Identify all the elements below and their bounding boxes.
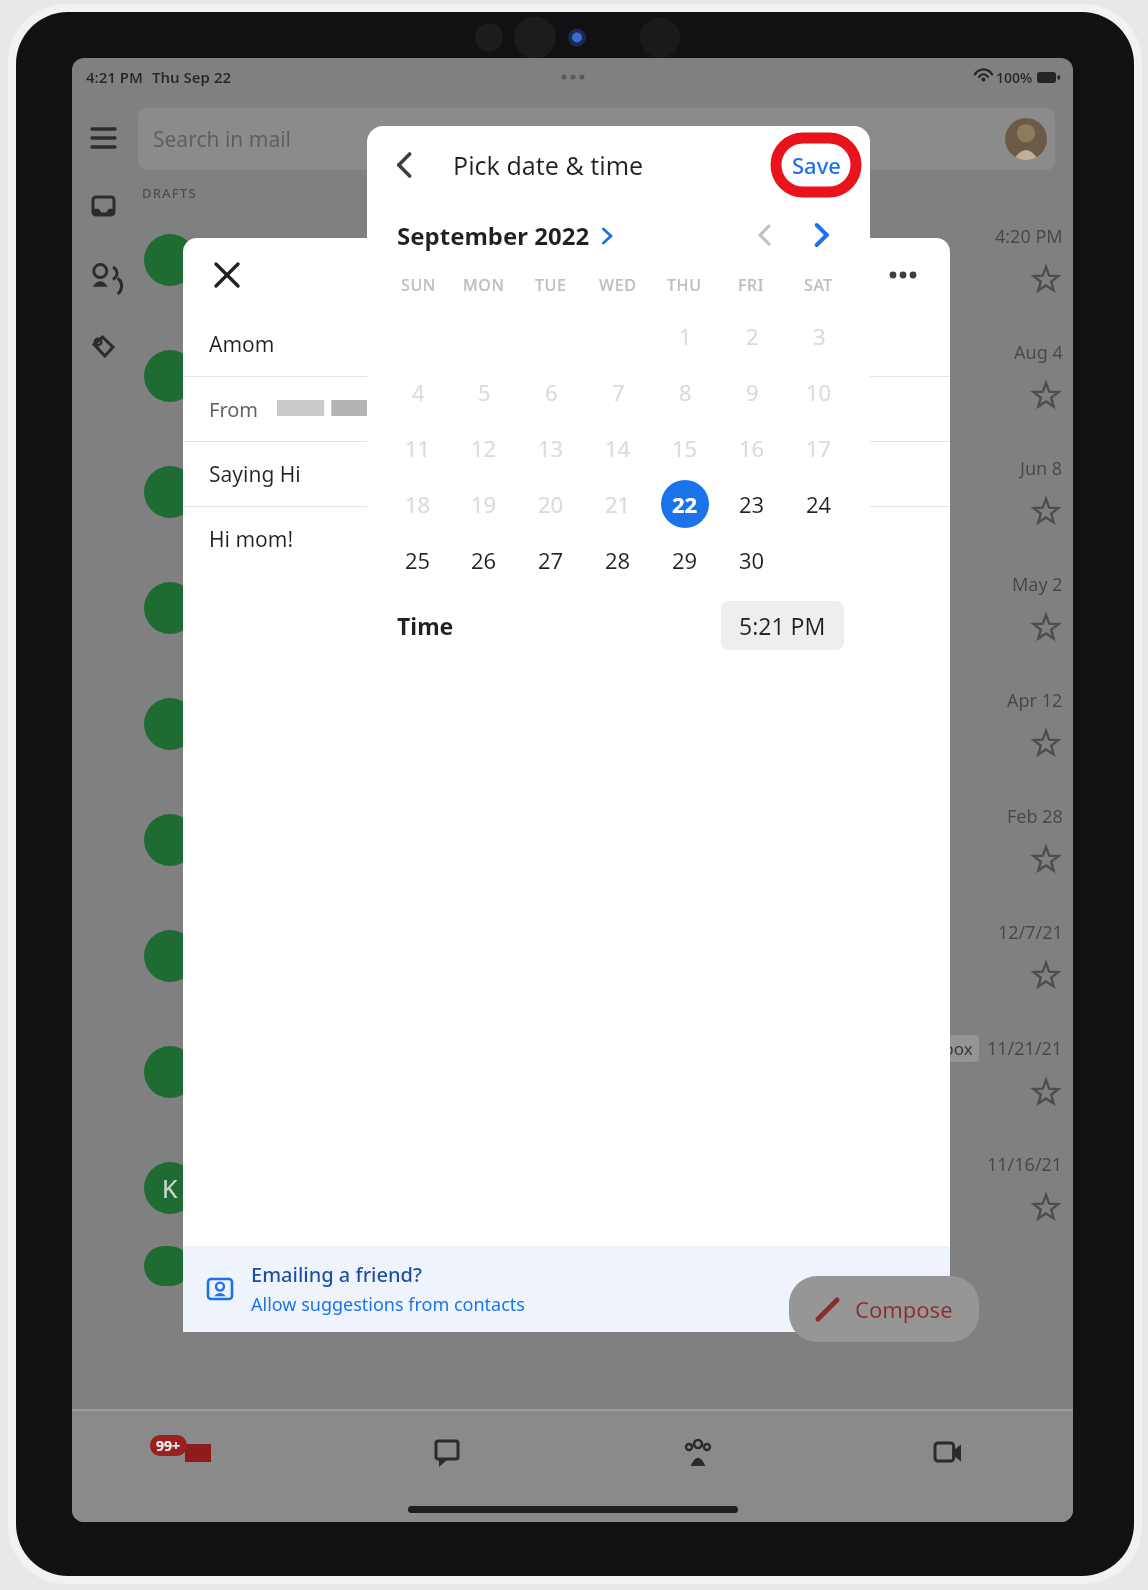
staticText: K [162, 1171, 178, 1205]
button[interactable]: Draft [134, 434, 1073, 550]
button[interactable]: 26 [460, 536, 508, 584]
staticText: 4:21 PM [86, 67, 143, 87]
staticText: 17 [806, 433, 832, 463]
button[interactable]: Star [1029, 379, 1063, 413]
button[interactable]: 12 [460, 424, 508, 472]
button[interactable]: Star [1029, 843, 1063, 877]
button[interactable]: Star [1029, 959, 1063, 993]
button[interactable]: Save [772, 134, 860, 196]
button[interactable]: 13 [527, 424, 575, 472]
button[interactable]: 15 [661, 424, 709, 472]
button[interactable]: 2 [728, 312, 776, 360]
button[interactable]: K [134, 1130, 1073, 1246]
button[interactable]: Search in mail [138, 108, 1055, 170]
button[interactable]: Star [1029, 263, 1063, 297]
button[interactable]: 7 [594, 368, 642, 416]
button[interactable]: 4 [394, 368, 442, 416]
button[interactable]: 10 [795, 368, 843, 416]
button[interactable]: 20 [527, 480, 575, 528]
staticText: 11 [405, 433, 431, 463]
staticText: Emailing a friend? [251, 1261, 422, 1288]
button[interactable]: Star [1029, 727, 1063, 761]
button[interactable]: 30 [728, 536, 776, 584]
button[interactable]: 19 [460, 480, 508, 528]
button[interactable]: Close [201, 249, 253, 301]
button[interactable]: 18 [394, 480, 442, 528]
button[interactable]: September 2022 [397, 219, 616, 252]
staticText: Inbox [927, 1037, 973, 1060]
button[interactable]: Mail [72, 1410, 323, 1496]
button[interactable]: 25 [394, 536, 442, 584]
button[interactable]: Contacts [81, 254, 125, 298]
button[interactable]: 5 [460, 368, 508, 416]
staticText: 23 [739, 489, 765, 519]
staticText: 5:21 PM [739, 610, 826, 641]
button[interactable]: Compose [789, 1276, 979, 1342]
button[interactable]: 16 [728, 424, 776, 472]
staticText: Re: hello [210, 363, 291, 390]
button[interactable]: Meet [823, 1410, 1073, 1496]
button[interactable]: 22 [661, 480, 709, 528]
button[interactable]: Star [1029, 495, 1063, 529]
button[interactable]: Spaces [573, 1410, 823, 1496]
button[interactable]: 24 [795, 480, 843, 528]
staticText: Pick date & time [453, 148, 644, 182]
button[interactable]: Star [1029, 611, 1063, 645]
button[interactable]: Draft [134, 318, 1073, 434]
staticText: 29 [672, 545, 698, 575]
button[interactable]: 21 [594, 480, 642, 528]
staticText: 22 [672, 489, 698, 519]
staticText: Feb 28 [1007, 804, 1063, 829]
staticText: 20 [538, 489, 564, 519]
staticText: Reply [210, 479, 262, 506]
staticText: 28 [605, 545, 631, 575]
button[interactable]: 3 [795, 312, 843, 360]
button[interactable]: 4:20 PM [134, 202, 1073, 318]
button[interactable]: 9 [728, 368, 776, 416]
button[interactable]: 11 [394, 424, 442, 472]
button[interactable]: Saying Hi [183, 442, 950, 506]
button[interactable]: Labels [81, 324, 125, 368]
button[interactable]: Next month [796, 210, 846, 260]
button[interactable]: Draft [134, 782, 1073, 898]
button[interactable]: Draft [134, 666, 1073, 782]
button[interactable]: From [183, 377, 950, 441]
button[interactable]: 27 [527, 536, 575, 584]
button[interactable]: 29 [661, 536, 709, 584]
button[interactable]: 6 [527, 368, 575, 416]
button[interactable]: Menu [81, 112, 125, 156]
button[interactable]: 17 [795, 424, 843, 472]
button[interactable]: Emailing a friend? [183, 1246, 950, 1332]
staticText: MON [463, 274, 505, 296]
staticText: 5 [478, 377, 491, 407]
button[interactable]: Dismiss [880, 1267, 924, 1311]
staticText: Draft [210, 333, 258, 360]
staticText: Aug 4 [1014, 340, 1063, 365]
button[interactable] [134, 1246, 1073, 1286]
button[interactable]: Inbox [81, 184, 125, 228]
staticText: 25 [405, 545, 431, 575]
button[interactable]: 8 [661, 368, 709, 416]
button[interactable]: 1 [661, 312, 709, 360]
button[interactable]: Previous month [740, 210, 790, 260]
button[interactable]: Draft [134, 550, 1073, 666]
button[interactable]: 5:21 PM [721, 601, 844, 650]
button[interactable]: 23 [728, 480, 776, 528]
staticText: Apr 12 [1007, 688, 1063, 713]
staticText: 26 [471, 545, 497, 575]
button[interactable]: Draft [134, 1014, 1073, 1130]
button[interactable]: More options [880, 252, 926, 298]
button[interactable]: Star [1029, 1076, 1063, 1110]
staticText: 100% [996, 68, 1033, 87]
button[interactable]: Back [377, 137, 433, 193]
staticText: Compose [855, 1294, 953, 1324]
button[interactable]: 14 [594, 424, 642, 472]
button[interactable]: Account [1005, 118, 1047, 160]
button[interactable]: Chat [323, 1410, 573, 1496]
button[interactable]: Hi mom! [183, 507, 950, 571]
button[interactable]: Star [1029, 1191, 1063, 1225]
button[interactable]: 28 [594, 536, 642, 584]
button[interactable]: Amom [183, 312, 950, 376]
button[interactable]: Draft [134, 898, 1073, 1014]
